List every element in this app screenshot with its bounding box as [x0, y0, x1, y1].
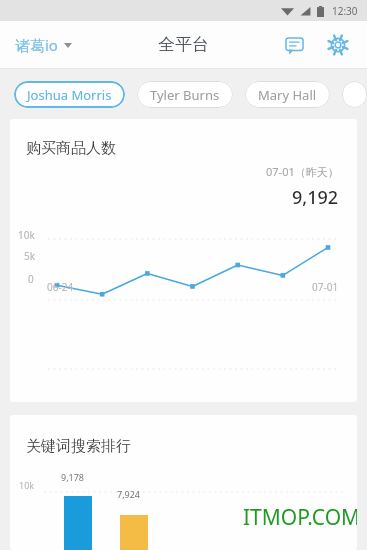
staticText: 07-01（昨天） [266, 164, 339, 179]
button[interactable]: Mike Ross [342, 81, 367, 108]
staticText: 9,178 [61, 471, 85, 483]
staticText: 关键词搜索排行 [26, 437, 131, 456]
staticText: 9,192 [292, 185, 339, 210]
staticText: 07-01 [312, 280, 339, 294]
button[interactable]: Mary Hall [245, 81, 330, 108]
staticText: 全平台 [158, 34, 209, 55]
staticText: 10k [18, 228, 35, 242]
staticText: 诸葛io [15, 35, 58, 55]
staticText: 7,924 [117, 488, 141, 500]
button[interactable]: Joshua Morris [14, 81, 125, 108]
staticText: 0 [28, 272, 34, 286]
button[interactable]: Settings [320, 27, 356, 63]
staticText: 12:30 [332, 4, 358, 18]
staticText: Joshua Morris [27, 86, 112, 104]
staticText: Mary Hall [258, 86, 317, 104]
button[interactable]: 关键词搜索排行 [10, 415, 357, 550]
staticText: 06-24 [47, 280, 74, 294]
staticText: 10k [19, 479, 35, 491]
staticText: 5k [24, 249, 36, 263]
staticText: Tyler Burns [150, 86, 220, 104]
button[interactable]: 购买商品人数 [10, 119, 357, 402]
staticText: 购买商品人数 [26, 139, 116, 158]
staticText: ITMOP.COM [243, 503, 357, 532]
button[interactable]: Messages [276, 27, 312, 63]
button[interactable]: Tyler Burns [137, 81, 233, 108]
button[interactable]: 诸葛io [12, 28, 75, 62]
